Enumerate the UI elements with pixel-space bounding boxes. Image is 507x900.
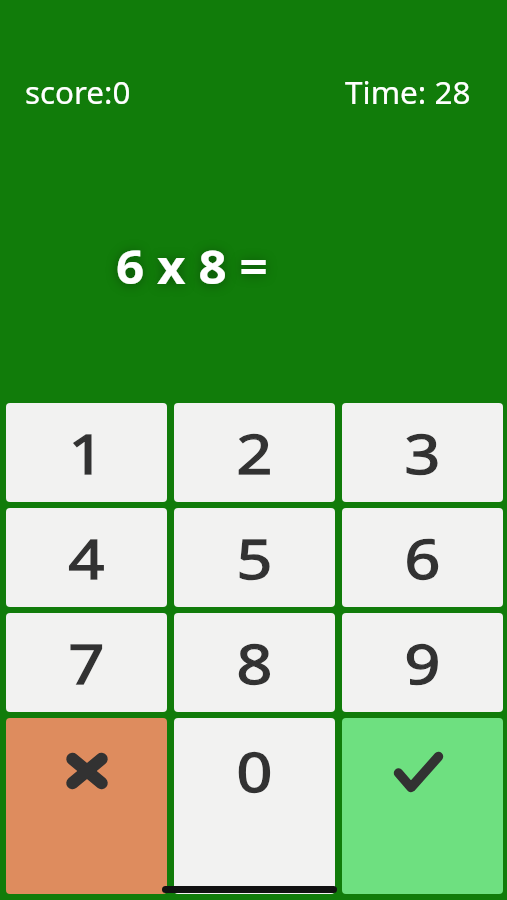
staticText: 6 x 8 = — [116, 234, 268, 298]
button[interactable]: 4 — [6, 508, 167, 607]
staticText: 2 — [236, 416, 272, 490]
button[interactable]: 6 — [342, 508, 503, 607]
staticText: 9 — [404, 626, 440, 700]
button[interactable]: 5 — [174, 508, 335, 607]
staticText: 3 — [404, 416, 440, 490]
staticText: 1 — [68, 416, 104, 490]
button[interactable]: 3 — [342, 403, 503, 502]
staticText: 8 — [236, 626, 272, 700]
staticText: 9 — [404, 626, 440, 700]
staticText: 8 — [236, 626, 272, 700]
staticText: 5 — [236, 521, 272, 595]
button[interactable]: 7 — [6, 613, 167, 712]
staticText: Time: 28 — [345, 72, 471, 113]
staticText: score:0 — [25, 72, 130, 113]
staticText: 0 — [236, 734, 272, 808]
button[interactable]: 1 — [6, 403, 167, 502]
staticText: 0 — [236, 734, 272, 808]
button[interactable] — [6, 718, 167, 894]
button[interactable] — [342, 718, 503, 894]
button[interactable]: 9 — [342, 613, 503, 712]
staticText: 3 — [404, 416, 440, 490]
button[interactable]: 0 — [174, 718, 335, 894]
staticText: 4 — [68, 521, 104, 595]
staticText: 1 — [68, 416, 104, 490]
staticText: 4 — [68, 521, 104, 595]
staticText: 6 — [404, 521, 440, 595]
staticText: 5 — [236, 521, 272, 595]
button[interactable]: 8 — [174, 613, 335, 712]
staticText: 6 — [404, 521, 440, 595]
button[interactable]: 2 — [174, 403, 335, 502]
staticText: 7 — [68, 626, 104, 700]
staticText: 7 — [68, 626, 104, 700]
staticText: 2 — [236, 416, 272, 490]
